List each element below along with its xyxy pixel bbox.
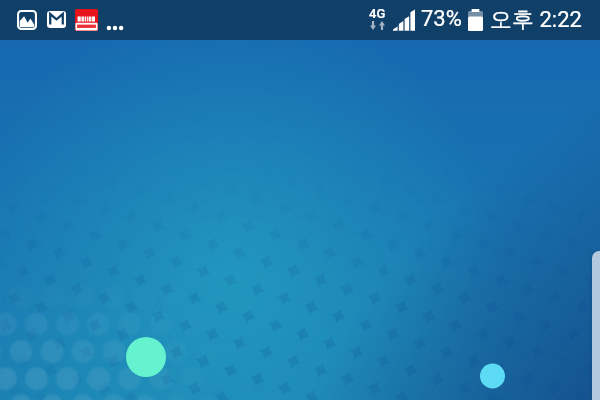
staticText: 4G [369, 6, 386, 21]
staticText: 73% [421, 6, 462, 32]
button[interactable]: More notifications [106, 24, 124, 32]
button[interactable]: Gmail notification [47, 11, 66, 28]
button[interactable] [592, 251, 600, 400]
button[interactable]: Berita notification [75, 9, 98, 31]
staticText: 오후 2:22 [490, 6, 582, 34]
button[interactable]: Screenshot notification [17, 10, 37, 30]
